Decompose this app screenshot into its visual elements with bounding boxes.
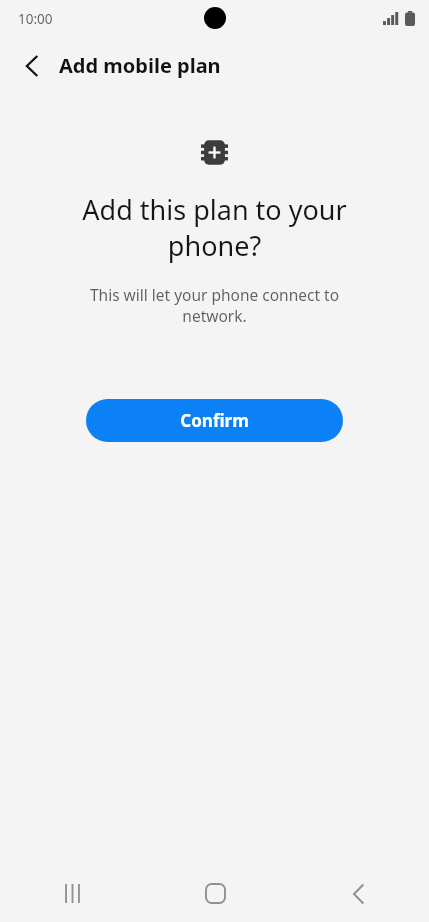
button[interactable]: Home [183, 865, 247, 922]
button[interactable]: Confirm [86, 399, 343, 442]
button[interactable]: Back [326, 865, 390, 922]
staticText: Add mobile plan [59, 52, 221, 79]
button[interactable]: Back [10, 44, 54, 88]
staticText: Confirm [180, 409, 249, 432]
staticText: This will let your phone connect to netw… [74, 284, 355, 327]
button[interactable]: Recent apps [40, 865, 104, 922]
staticText: Add this plan to your phone? [56, 191, 373, 264]
staticText: 10:00 [18, 10, 53, 28]
